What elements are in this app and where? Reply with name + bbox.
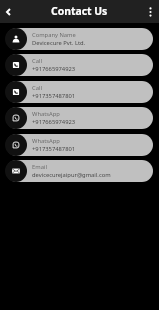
button[interactable]: WhatsApp — [0, 107, 159, 129]
staticText: WhatsApp — [32, 110, 60, 118]
staticText: +917665974923 — [32, 118, 76, 126]
button[interactable]: Call — [0, 81, 159, 103]
button[interactable]: Back — [3, 6, 14, 17]
staticText: +917665974923 — [32, 65, 76, 73]
staticText: Company Name — [32, 31, 76, 39]
staticText: Email — [32, 163, 47, 171]
staticText: WhatsApp — [32, 137, 60, 145]
staticText: +917357487801 — [32, 145, 76, 153]
button[interactable]: Company Name — [0, 28, 159, 50]
button[interactable]: Call — [0, 54, 159, 76]
staticText: Call — [32, 84, 42, 92]
button[interactable]: More options — [141, 3, 159, 21]
staticText: devicecurejaipur@gmail.com — [32, 171, 111, 179]
button[interactable]: Email — [0, 160, 159, 182]
staticText: +917357487801 — [32, 92, 76, 100]
staticText: Call — [32, 57, 42, 65]
staticText: Contact Us — [51, 4, 108, 18]
staticText: Devicecure Pvt. Ltd. — [32, 39, 86, 47]
button[interactable]: WhatsApp — [0, 134, 159, 156]
